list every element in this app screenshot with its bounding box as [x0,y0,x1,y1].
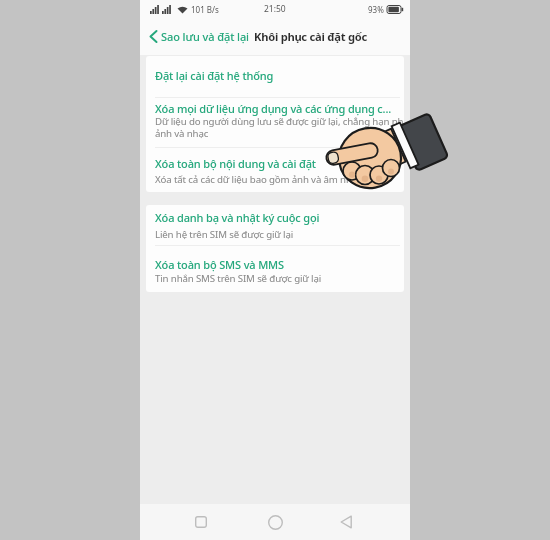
staticText: Khôi phục cài đặt gốc [254,29,367,44]
staticText: 101 B/s [191,4,219,15]
staticText: Xóa danh bạ và nhật ký cuộc gọi [155,210,320,225]
button[interactable]: Xóa mọi dữ liệu ứng dụng và các ứng dụng… [146,98,404,147]
staticText: Liên hệ trên SIM sẽ được giữ lại [155,228,294,241]
staticText: Xóa toàn bộ nội dung và cài đặt [155,156,316,171]
button[interactable] [333,509,359,535]
staticText: Sao lưu và đặt lại [161,29,249,44]
staticText: Tin nhắn SMS trên SIM sẽ được giữ lại [155,272,322,285]
staticText: Đặt lại cài đặt hệ thống [155,68,274,83]
button[interactable] [262,509,288,535]
staticText: 93% [368,4,384,15]
button[interactable]: Xóa toàn bộ nội dung và cài đặt [146,148,404,192]
button[interactable]: Đặt lại cài đặt hệ thống [146,56,404,97]
button[interactable]: Sao lưu và đặt lại [149,29,249,44]
staticText: Xóa toàn bộ SMS và MMS [155,257,284,272]
button[interactable]: Xóa toàn bộ SMS và MMS [146,246,404,292]
button[interactable] [188,509,214,535]
staticText: Dữ liệu do người dùng lưu sẽ được giữ lạ… [155,115,404,128]
staticText: ảnh và nhạc [155,127,209,140]
staticText: 21:50 [264,3,286,15]
staticText: Xóa tất cả các dữ liệu bao gồm ảnh và âm… [155,173,362,186]
button[interactable]: Xóa danh bạ và nhật ký cuộc gọi [146,205,404,245]
staticText: Xóa mọi dữ liệu ứng dụng và các ứng dụng… [155,101,392,116]
